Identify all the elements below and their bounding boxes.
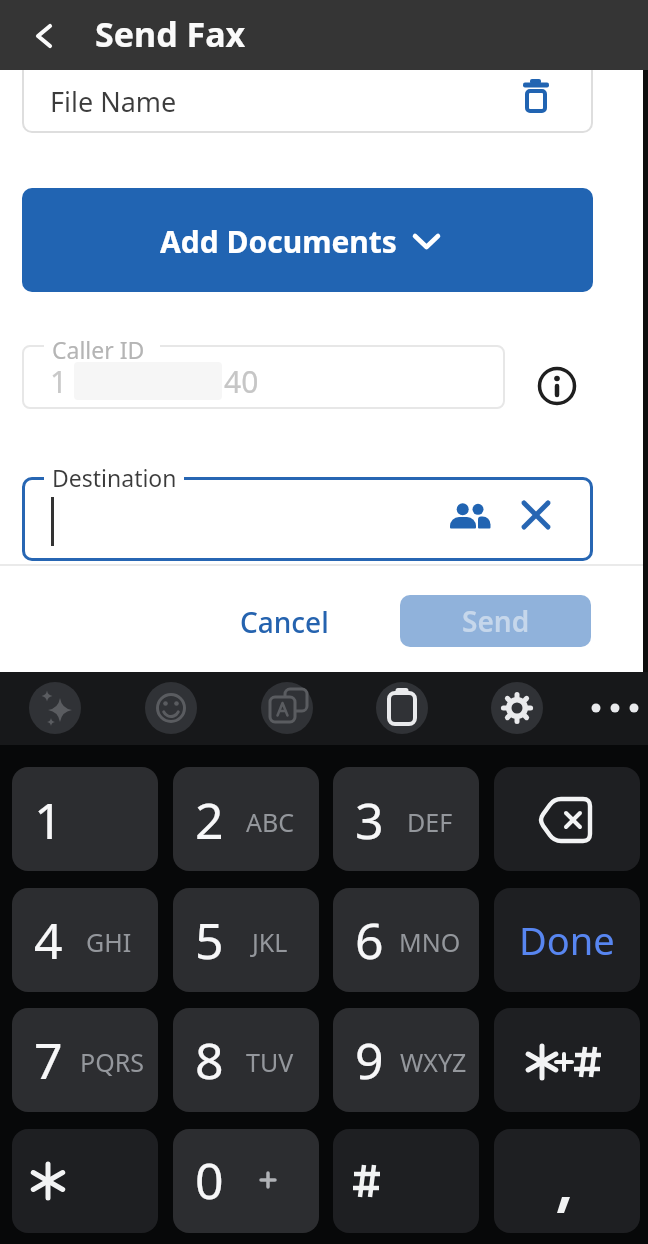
button[interactable] — [376, 682, 428, 734]
button[interactable]: Cancel — [134, 577, 434, 667]
staticText: Destination — [52, 462, 177, 493]
button[interactable] — [12, 767, 158, 871]
button[interactable] — [531, 360, 583, 412]
staticText: 1 — [50, 361, 68, 402]
button[interactable] — [494, 1129, 640, 1233]
staticText: 4 — [34, 906, 63, 974]
button[interactable] — [12, 888, 158, 992]
staticText: 9 — [355, 1026, 384, 1094]
staticText: JKL — [252, 925, 288, 959]
staticText: 6 — [355, 906, 384, 974]
staticText: Send Fax — [95, 11, 246, 57]
button[interactable] — [173, 767, 319, 871]
staticText: 1 — [34, 786, 63, 854]
button[interactable] — [510, 72, 562, 124]
staticText: DEF — [407, 805, 453, 839]
button[interactable] — [145, 682, 197, 734]
staticText: Cancel — [240, 603, 329, 641]
staticText: Add Documents — [160, 221, 397, 262]
button[interactable] — [29, 682, 81, 734]
button[interactable] — [22, 188, 593, 292]
staticText: TUV — [246, 1045, 294, 1079]
staticText: 5 — [195, 906, 224, 974]
button[interactable] — [173, 1129, 319, 1233]
staticText: Done — [519, 914, 615, 966]
staticText: WXYZ — [400, 1045, 467, 1079]
button[interactable] — [444, 492, 496, 540]
button[interactable] — [333, 1129, 479, 1233]
staticText: MNO — [399, 925, 461, 959]
staticText: File Name — [50, 83, 177, 120]
staticText: 3 — [355, 786, 384, 854]
button[interactable] — [12, 1129, 158, 1233]
staticText: 2 — [195, 786, 224, 854]
button[interactable] — [333, 1008, 479, 1112]
staticText: 0 — [195, 1146, 224, 1214]
button[interactable] — [494, 767, 640, 871]
button[interactable] — [333, 767, 479, 871]
button[interactable] — [12, 1008, 158, 1112]
button[interactable] — [494, 1008, 640, 1112]
button[interactable] — [10, 0, 80, 70]
button[interactable] — [261, 682, 313, 734]
staticText: PQRS — [80, 1045, 144, 1079]
staticText: 8 — [195, 1026, 224, 1094]
staticText: ABC — [246, 805, 295, 839]
staticText: 40 — [224, 361, 259, 402]
button[interactable] — [173, 1008, 319, 1112]
button[interactable] — [333, 888, 479, 992]
button[interactable] — [173, 888, 319, 992]
button[interactable] — [514, 494, 558, 538]
button[interactable] — [400, 595, 591, 647]
button[interactable] — [494, 888, 640, 992]
button[interactable] — [491, 682, 543, 734]
staticText: Send — [462, 602, 530, 640]
button[interactable] — [588, 682, 642, 734]
staticText: Caller ID — [52, 334, 145, 365]
staticText: GHI — [86, 925, 132, 959]
staticText: 7 — [34, 1026, 63, 1094]
